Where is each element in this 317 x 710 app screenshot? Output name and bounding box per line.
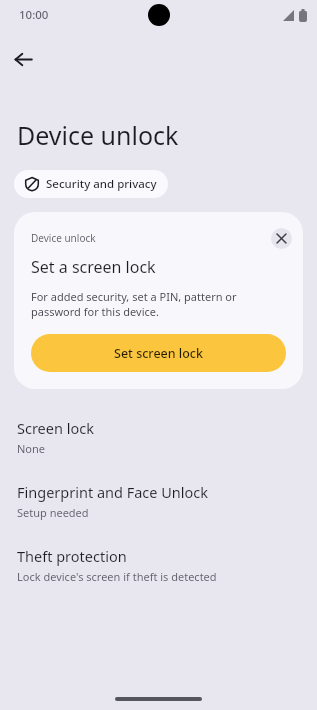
button[interactable]: Fingerprint and Face Unlock — [0, 482, 317, 520]
staticText: Screen lock — [17, 418, 94, 438]
button[interactable]: Set screen lock — [31, 334, 286, 372]
staticText: Theft protection — [17, 546, 127, 566]
button[interactable]: Screen lock — [0, 418, 317, 456]
staticText: Set a screen lock — [31, 256, 156, 278]
staticText: Security and privacy — [46, 176, 157, 192]
staticText: For added security, set a PIN, pattern o… — [31, 289, 283, 319]
staticText: None — [17, 441, 46, 456]
button[interactable]: Dismiss — [271, 228, 292, 249]
staticText: Setup needed — [17, 505, 89, 520]
button[interactable]: Security and privacy — [14, 170, 168, 198]
button[interactable]: Back — [6, 42, 40, 76]
staticText: Lock device's screen if theft is detecte… — [17, 569, 217, 584]
staticText: Set screen lock — [114, 345, 203, 362]
button[interactable]: Theft protection — [0, 546, 317, 584]
staticText: 10:00 — [19, 7, 49, 23]
staticText: Device unlock — [17, 118, 179, 152]
staticText: Device unlock — [31, 231, 96, 245]
staticText: Fingerprint and Face Unlock — [17, 482, 209, 502]
